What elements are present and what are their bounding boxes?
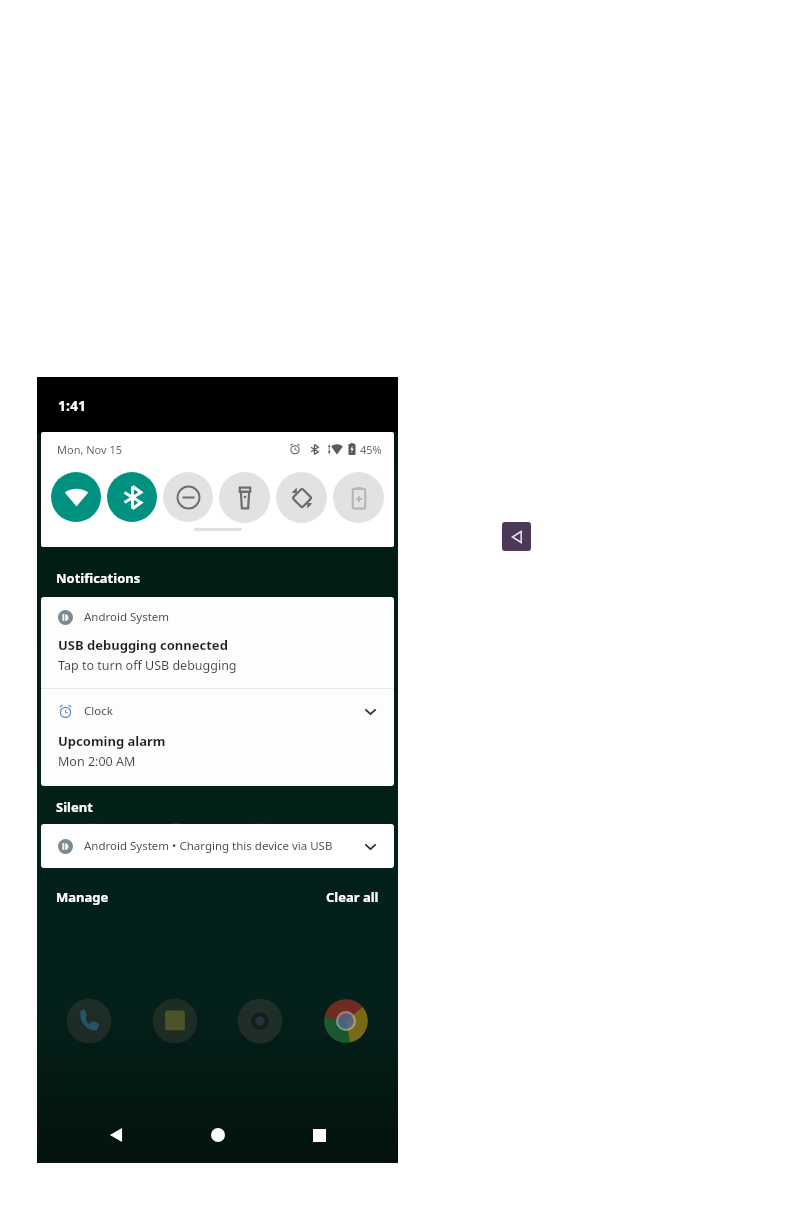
- staticText: Clock: [84, 703, 113, 719]
- button[interactable]: Android System • Charging this device vi…: [41, 824, 394, 868]
- button[interactable]: Clear all: [326, 884, 379, 910]
- staticText: Upcoming alarm: [58, 732, 166, 750]
- button[interactable]: Home: [195, 1112, 241, 1158]
- staticText: Notifications: [56, 569, 141, 587]
- button[interactable]: Flashlight: [219, 472, 270, 523]
- button[interactable]: Back: [502, 522, 531, 551]
- staticText: Mon, Nov 15: [57, 442, 123, 457]
- staticText: Android System • Charging this device vi…: [84, 838, 333, 854]
- staticText: 45%: [360, 442, 382, 457]
- staticText: Manage: [56, 888, 109, 906]
- button[interactable]: Auto-rotate: [276, 472, 327, 523]
- button[interactable]: Android System: [41, 597, 394, 688]
- button[interactable]: Expand: [360, 701, 380, 721]
- button[interactable]: Recents: [296, 1112, 342, 1158]
- staticText: Tap to turn off USB debugging: [58, 657, 237, 674]
- button[interactable]: Wi-Fi: [51, 472, 101, 522]
- button[interactable]: Back: [93, 1112, 139, 1158]
- button[interactable]: Do not disturb: [163, 472, 213, 522]
- button[interactable]: Expand: [360, 836, 380, 856]
- staticText: USB debugging connected: [58, 636, 228, 654]
- staticText: Silent: [56, 798, 93, 816]
- staticText: Clear all: [326, 888, 379, 906]
- button[interactable]: Bluetooth: [107, 472, 157, 522]
- staticText: 1:41: [58, 396, 86, 415]
- staticText: Mon 2:00 AM: [58, 753, 136, 770]
- button[interactable]: Battery Saver: [333, 472, 384, 523]
- button[interactable]: Clock: [41, 689, 394, 786]
- button[interactable]: Manage: [56, 884, 109, 910]
- staticText: Android System: [84, 609, 170, 625]
